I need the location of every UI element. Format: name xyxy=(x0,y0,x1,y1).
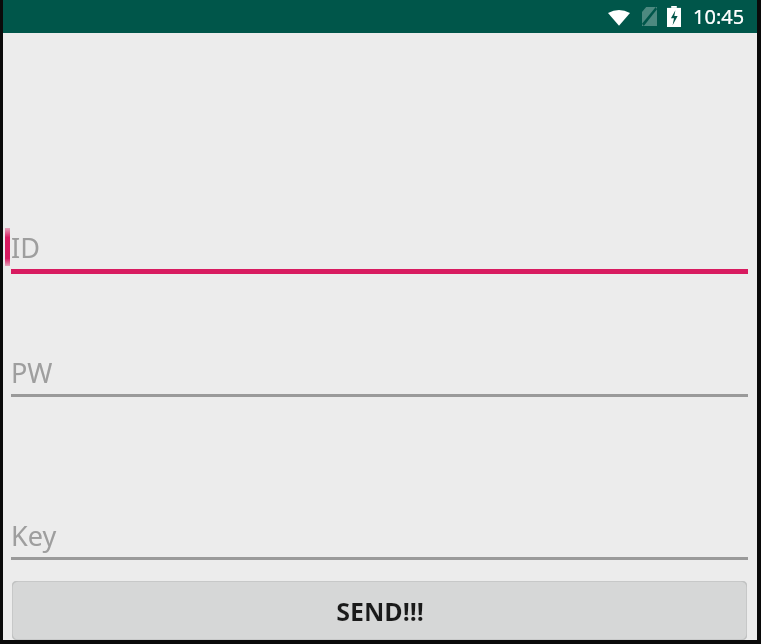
staticText: SEND!!! xyxy=(336,594,424,628)
button[interactable]: Key xyxy=(3,513,757,560)
button[interactable]: PW xyxy=(3,350,757,397)
staticText: 10:45 xyxy=(693,3,745,30)
staticText: ID xyxy=(11,229,40,266)
staticText: PW xyxy=(11,354,53,391)
button[interactable]: ID xyxy=(3,225,757,274)
button[interactable]: SEND!!! xyxy=(12,581,747,640)
staticText: Key xyxy=(11,517,57,554)
